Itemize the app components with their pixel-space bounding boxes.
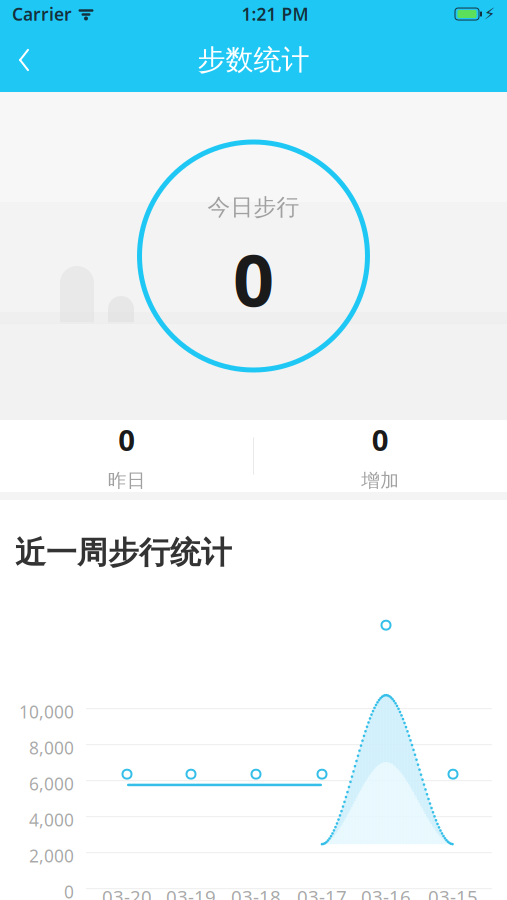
staticText: 1:21 PM bbox=[241, 2, 308, 25]
staticText: 0 bbox=[372, 420, 389, 459]
staticText: 步数统计 bbox=[197, 43, 309, 77]
staticText: 0 bbox=[64, 880, 74, 900]
button[interactable]: 0 bbox=[0, 406, 253, 506]
staticText: 10,000 bbox=[19, 700, 74, 723]
staticText: 03-17 bbox=[297, 884, 347, 900]
staticText: 8,000 bbox=[29, 736, 74, 759]
button[interactable]: Back bbox=[2, 38, 46, 82]
staticText: Carrier bbox=[12, 2, 72, 25]
staticText: 今日步行 bbox=[207, 193, 299, 221]
staticText: 0 bbox=[233, 231, 274, 327]
staticText: ⚡︎ bbox=[484, 5, 495, 23]
staticText: 03-19 bbox=[166, 884, 216, 900]
staticText: 近一周步行统计 bbox=[15, 534, 232, 572]
staticText: 03-18 bbox=[231, 884, 281, 900]
staticText: 6,000 bbox=[29, 772, 74, 795]
button[interactable]: 0 bbox=[253, 406, 507, 506]
staticText: 03-20 bbox=[102, 884, 152, 900]
staticText: 03-15 bbox=[428, 884, 478, 900]
staticText: 增加 bbox=[361, 469, 399, 492]
staticText: 4,000 bbox=[29, 808, 74, 831]
staticText: 0 bbox=[118, 420, 135, 459]
staticText: 昨日 bbox=[108, 469, 146, 492]
staticText: 03-16 bbox=[361, 884, 411, 900]
staticText: 2,000 bbox=[29, 844, 74, 867]
